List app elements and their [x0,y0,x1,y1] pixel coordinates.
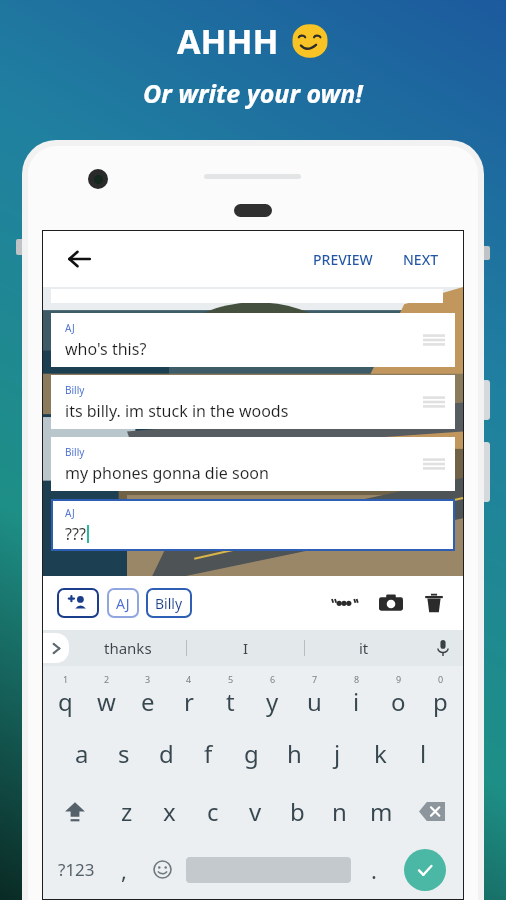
button[interactable]: Voice input [423,630,463,666]
button[interactable]: s [103,724,145,782]
staticText: Billy [65,445,85,459]
button[interactable]: 6 [251,666,293,724]
staticText: thanks [104,638,152,658]
other: Reorder [423,329,445,351]
button[interactable]: j [316,724,359,782]
staticText: d [159,737,174,770]
button[interactable]: 1 [45,666,86,724]
staticText: e [141,685,155,718]
button[interactable]: . [354,840,393,899]
button[interactable]: NEXT [395,244,447,275]
button[interactable]: Camera [375,587,407,619]
other: Reorder [423,453,445,475]
staticText: 5 [228,673,234,685]
button[interactable]: thanks [69,630,187,666]
button[interactable]: Delete [419,588,449,618]
button[interactable]: a [61,724,103,782]
staticText: AJ [116,594,130,613]
button[interactable]: n [318,782,360,840]
staticText: Billy [65,383,85,397]
staticText: z [121,795,133,828]
button[interactable]: Billy [51,437,455,491]
staticText: my phones gonna die soon [65,462,269,484]
button[interactable]: Back [59,239,99,279]
button[interactable]: AJ [51,313,455,367]
button[interactable]: Billy [51,375,455,429]
button[interactable]: AJ [51,499,455,551]
button[interactable]: d [145,724,187,782]
staticText: 4 [186,673,192,685]
button[interactable]: AJ [107,588,139,618]
staticText: 8 [354,673,360,685]
button[interactable]: m [360,782,402,840]
staticText: 9 [396,673,402,685]
button[interactable]: Billy [146,588,192,618]
staticText: v [249,795,262,828]
staticText: AHHH [177,18,279,64]
staticText: 0 [438,673,444,685]
staticText: , [121,855,127,885]
button[interactable]: 4 [168,666,209,724]
staticText: . [371,855,377,885]
staticText: 6 [270,673,276,685]
button[interactable]: ?123 [49,840,104,899]
staticText: j [334,737,341,770]
button[interactable]: x [148,782,191,840]
staticText: NEXT [403,250,439,269]
button[interactable]: Pause [323,590,365,616]
button[interactable]: k [359,724,402,782]
staticText: ?123 [58,858,95,881]
button[interactable]: I [187,630,305,666]
button[interactable]: h [273,724,316,782]
staticText: 7 [312,673,318,685]
staticText: m [370,795,393,828]
button[interactable]: , [104,840,143,899]
button[interactable]: 9 [377,666,419,724]
staticText: s [118,737,130,770]
button[interactable]: 8 [335,666,377,724]
staticText: AJ [65,506,75,520]
button[interactable]: Done [393,840,457,899]
button[interactable]: PREVIEW [305,244,381,275]
staticText: y [266,685,279,718]
button[interactable]: 7 [293,666,335,724]
button[interactable]: z [105,782,148,840]
button[interactable]: Space [182,840,354,899]
button[interactable]: b [276,782,318,840]
staticText: x [163,795,176,828]
button[interactable]: 5 [209,666,251,724]
staticText: r [184,685,194,718]
staticText: ??? [65,523,86,545]
staticText: t [226,685,235,718]
staticText: c [207,795,219,828]
staticText: u [307,685,322,718]
button[interactable]: l [402,724,445,782]
staticText: AJ [65,321,75,335]
button[interactable]: Emoji [143,840,182,899]
staticText: PREVIEW [313,250,373,269]
staticText: w [97,685,116,718]
button[interactable]: Backspace [402,782,461,840]
staticText: l [420,737,427,770]
staticText: its billy. im stuck in the woods [65,400,289,422]
staticText: who's this? [65,338,147,360]
button[interactable]: c [191,782,234,840]
button[interactable]: g [230,724,273,782]
staticText: o [391,685,406,718]
button[interactable]: 2 [86,666,127,724]
staticText: Billy [155,594,183,613]
button[interactable]: it [305,630,423,666]
button[interactable]: Shift [45,782,105,840]
button[interactable]: 0 [419,666,461,724]
button[interactable]: f [187,724,230,782]
button[interactable]: Add person [57,588,99,618]
staticText: q [58,685,73,718]
button[interactable]: Expand [43,633,69,663]
staticText: Or write your own! [143,76,363,110]
button[interactable]: 3 [127,666,168,724]
button[interactable]: v [234,782,276,840]
staticText: k [374,737,387,770]
staticText: g [244,737,259,770]
staticText: it [359,638,369,658]
